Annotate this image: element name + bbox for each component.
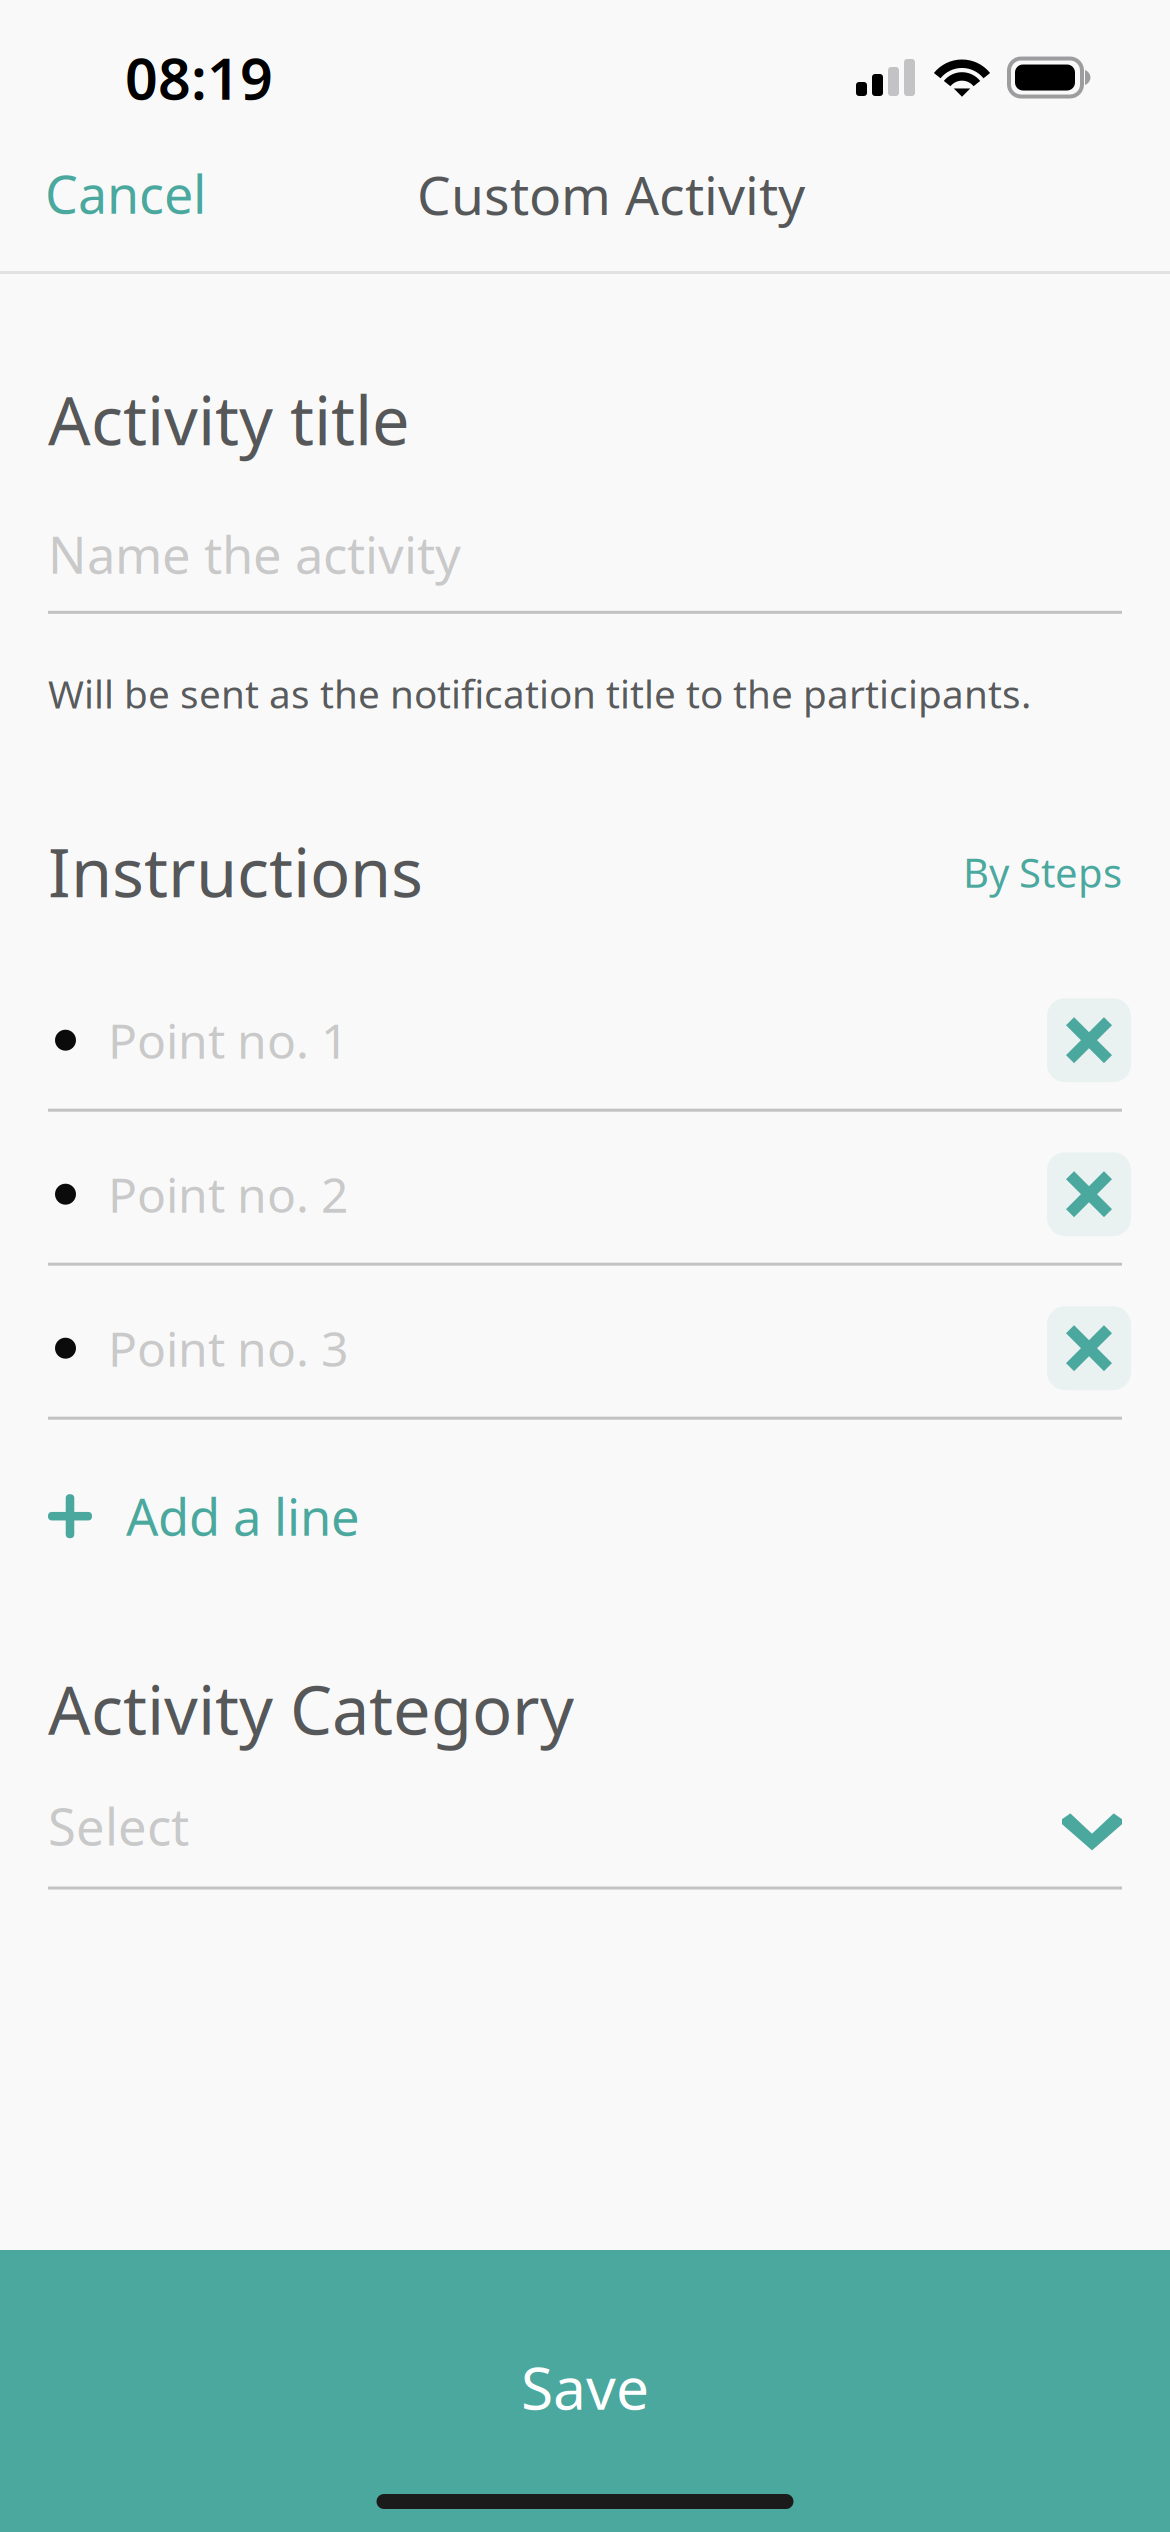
button[interactable]: Cancel (0, 155, 236, 254)
staticText: Instructions (48, 827, 423, 916)
staticText: By Steps (963, 846, 1122, 899)
button[interactable]: Add a line (0, 1483, 1170, 1550)
staticText: Will be sent as the notification title t… (48, 668, 1031, 719)
button[interactable]: Remove Point no. 1 (1047, 998, 1170, 1082)
button[interactable]: Remove Point no. 2 (1047, 1152, 1170, 1236)
button[interactable]: Remove Point no. 3 (1047, 1306, 1170, 1390)
staticText: 08:19 (125, 39, 273, 115)
staticText: Add a line (126, 1483, 360, 1550)
staticText: Point no. 1 (108, 1008, 348, 1072)
staticText: Activity Category (48, 1665, 574, 1753)
staticText: Point no. 3 (108, 1316, 348, 1380)
staticText: Custom Activity (417, 159, 805, 230)
button[interactable]: Select (0, 1792, 1170, 1859)
staticText: Cancel (45, 159, 206, 228)
staticText: Select (48, 1792, 189, 1859)
staticText: Name the activity (48, 520, 461, 588)
button[interactable]: By Steps (923, 836, 1122, 916)
staticText: Point no. 2 (108, 1162, 348, 1226)
staticText: Activity title (48, 375, 410, 463)
staticText: Save (521, 2348, 649, 2426)
button[interactable]: Save (0, 2250, 1170, 2532)
